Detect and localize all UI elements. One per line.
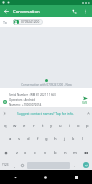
staticText: Conversation with 0709241200 - Now bbox=[21, 83, 72, 87]
staticText: o bbox=[77, 123, 80, 129]
button[interactable]: v bbox=[40, 145, 50, 160]
staticText: j bbox=[64, 136, 66, 142]
staticText: u bbox=[59, 123, 62, 129]
staticText: ?123 bbox=[2, 163, 9, 167]
button[interactable]: f bbox=[33, 132, 42, 145]
staticText: c bbox=[34, 150, 37, 156]
button[interactable]: More options bbox=[79, 5, 92, 17]
staticText: . bbox=[74, 163, 76, 168]
button[interactable]: x bbox=[21, 145, 30, 160]
staticText: f bbox=[37, 136, 39, 142]
staticText: To bbox=[3, 20, 7, 25]
staticText: i bbox=[69, 123, 71, 129]
staticText: w bbox=[13, 123, 17, 129]
button[interactable]: a bbox=[5, 132, 15, 145]
staticText: Serial Number : WM 81 2021 11 660 bbox=[9, 93, 56, 97]
button[interactable]: g bbox=[42, 132, 51, 145]
staticText: t bbox=[42, 123, 44, 129]
button[interactable]: s bbox=[15, 132, 24, 145]
staticText: , bbox=[14, 163, 16, 168]
staticText: s bbox=[18, 136, 21, 142]
staticText: Conversation bbox=[13, 8, 40, 14]
button[interactable]: w bbox=[10, 119, 20, 132]
staticText: v bbox=[44, 150, 47, 156]
button[interactable]: d bbox=[24, 132, 33, 145]
button[interactable]: u bbox=[56, 119, 65, 132]
button[interactable]: b bbox=[50, 145, 60, 160]
button[interactable]: 0709241200 bbox=[13, 19, 43, 25]
button[interactable]: h bbox=[51, 132, 60, 145]
staticText: m bbox=[73, 150, 77, 156]
staticText: p bbox=[86, 123, 89, 129]
button[interactable]: Enter bbox=[79, 160, 92, 170]
button[interactable]: l bbox=[78, 132, 87, 145]
staticText: x bbox=[24, 150, 27, 156]
staticText: d bbox=[27, 136, 30, 142]
button[interactable]: o bbox=[74, 119, 83, 132]
button[interactable]: e bbox=[20, 119, 29, 132]
button[interactable]: Call bbox=[69, 5, 79, 17]
staticText: n bbox=[64, 150, 67, 156]
staticText: Operators : Android bbox=[9, 98, 36, 102]
staticText: SMS bbox=[82, 101, 88, 105]
button[interactable]: Send SMS bbox=[82, 96, 88, 105]
button[interactable]: c bbox=[30, 145, 40, 160]
button[interactable]: m bbox=[70, 145, 80, 160]
staticText: r bbox=[33, 123, 35, 129]
button[interactable]: j bbox=[60, 132, 69, 145]
button[interactable]: z bbox=[12, 145, 21, 160]
button[interactable]: k bbox=[69, 132, 78, 145]
staticText: h bbox=[54, 136, 57, 142]
button[interactable]: t bbox=[38, 119, 47, 132]
button[interactable]: Back bbox=[0, 5, 13, 17]
button[interactable]: i bbox=[65, 119, 74, 132]
button[interactable]: q bbox=[0, 119, 10, 132]
button[interactable]: n bbox=[60, 145, 70, 160]
staticText: g bbox=[45, 136, 48, 142]
button[interactable]: Back bbox=[0, 170, 30, 184]
button[interactable]: Recents bbox=[61, 170, 92, 184]
staticText: k bbox=[72, 136, 75, 142]
staticText: q bbox=[4, 123, 7, 129]
staticText: Numero : +70000072054 bbox=[9, 103, 42, 107]
button[interactable]: Home bbox=[30, 170, 61, 184]
button[interactable]: y bbox=[47, 119, 56, 132]
button[interactable]: Backspace bbox=[80, 145, 92, 160]
staticText: e bbox=[23, 123, 26, 129]
staticText: y bbox=[50, 123, 53, 129]
button[interactable]: Previous suggestion bbox=[0, 107, 8, 119]
button[interactable]: , bbox=[11, 160, 18, 170]
staticText: l bbox=[82, 136, 84, 142]
button[interactable]: r bbox=[29, 119, 38, 132]
staticText: a bbox=[9, 136, 12, 142]
button[interactable]: ?123 bbox=[0, 160, 11, 170]
staticText: Suggest contact names? Tap for info. bbox=[17, 111, 74, 115]
staticText: 0709241200 bbox=[21, 20, 40, 24]
staticText: z bbox=[16, 150, 18, 156]
button[interactable]: Shift bbox=[0, 145, 12, 160]
button[interactable]: Expand suggestions bbox=[84, 107, 92, 119]
button[interactable]: Emoji bbox=[18, 160, 26, 170]
button[interactable]: p bbox=[83, 119, 92, 132]
staticText: b bbox=[54, 150, 57, 156]
